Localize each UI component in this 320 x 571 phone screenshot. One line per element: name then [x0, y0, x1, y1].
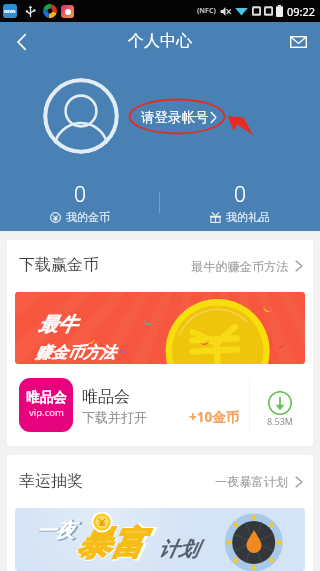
staticText: 计划: [158, 537, 198, 562]
staticText: 幸运抽奖: [19, 471, 83, 491]
staticText: 暴富: [75, 521, 147, 566]
staticText: 一夜暴富计划: [215, 474, 289, 489]
button[interactable]: 一夜: [15, 508, 305, 571]
button[interactable]: 0: [0, 180, 160, 224]
button[interactable]: 请登录帐号: [141, 109, 217, 126]
staticText: 唯品会: [82, 387, 130, 407]
staticText: 个人中心: [128, 31, 192, 51]
button[interactable]: Back: [0, 22, 42, 62]
button[interactable]: Avatar: [43, 78, 119, 154]
staticText: 赚金币方法: [35, 343, 115, 363]
staticText: 最牛: [38, 312, 77, 337]
staticText: 下载赢金币: [19, 255, 99, 275]
button[interactable]: 最牛: [15, 292, 305, 364]
staticText: 09:22: [287, 4, 316, 19]
button[interactable]: 下载赢金币: [7, 240, 313, 292]
other: Download: [268, 391, 292, 415]
button[interactable]: 唯品会: [7, 364, 313, 446]
button[interactable]: Messages: [276, 22, 320, 62]
staticText: NEWS: [4, 9, 16, 14]
staticText: 0: [234, 180, 246, 209]
staticText: 一夜: [36, 519, 74, 543]
staticText: 最牛的赚金币方法: [191, 259, 289, 274]
staticText: vip.com: [29, 406, 64, 419]
staticText: +10金币: [189, 408, 240, 426]
staticText: (NFC): [197, 6, 216, 16]
button[interactable]: 幸运抽奖: [7, 455, 313, 508]
staticText: 我的礼品: [226, 210, 270, 224]
staticText: 我的金币: [66, 210, 110, 224]
staticText: 下载并打开: [82, 409, 147, 425]
staticText: 0: [74, 180, 86, 209]
staticText: 唯品会: [26, 389, 67, 406]
staticText: 暴富: [76, 522, 144, 565]
button[interactable]: 0: [160, 180, 320, 224]
staticText: 一夜: [36, 519, 76, 544]
staticText: 8.53M: [267, 415, 294, 427]
staticText: 请登录帐号: [141, 109, 209, 126]
